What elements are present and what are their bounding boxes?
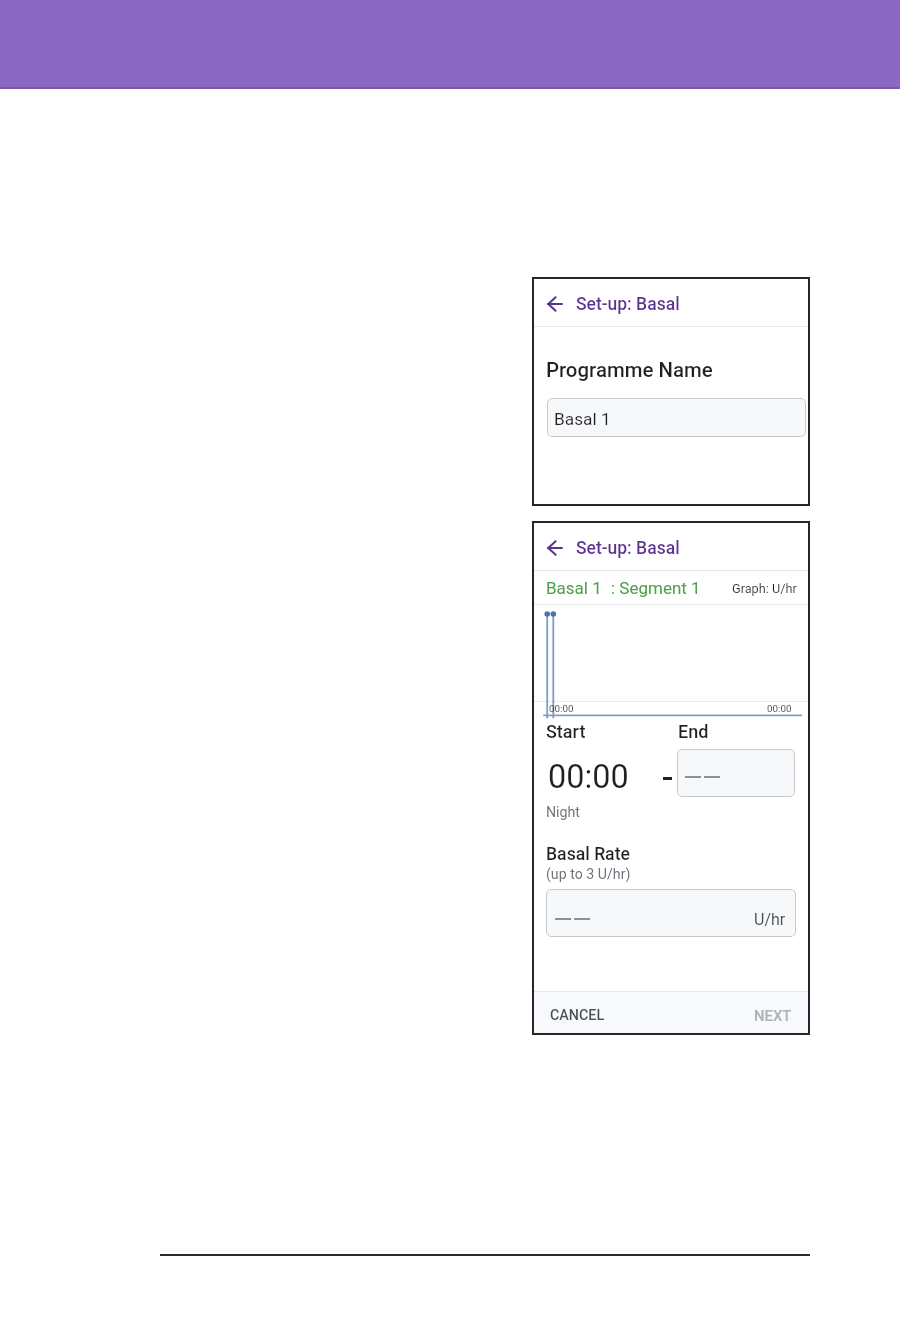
staticText: 00:00 — [548, 758, 629, 796]
staticText: CANCEL — [550, 1007, 605, 1024]
staticText: NEXT — [754, 1007, 792, 1024]
button[interactable]: NEXT — [754, 999, 792, 1032]
staticText: Basal 1 — [554, 409, 611, 429]
button[interactable]: Back — [541, 534, 569, 562]
staticText: Set-up: Basal — [576, 538, 680, 559]
staticText: 00:00 — [549, 703, 574, 714]
staticText: Programme Name — [546, 358, 713, 382]
button[interactable] — [677, 749, 795, 797]
staticText: (up to 3 U/hr) — [546, 866, 631, 883]
button[interactable]: Basal 1 — [547, 398, 806, 437]
staticText: Night — [546, 804, 580, 821]
staticText: End — [678, 721, 709, 742]
staticText: 00:00 — [767, 703, 792, 714]
staticText: U/hr — [754, 910, 786, 929]
button[interactable]: U/hr — [546, 889, 796, 937]
staticText: Start — [546, 721, 586, 742]
staticText: Basal Rate — [546, 844, 630, 865]
button[interactable]: Back — [541, 290, 569, 318]
button[interactable]: CANCEL — [550, 999, 605, 1032]
staticText: Set-up: Basal — [576, 294, 680, 315]
staticText: Basal 1 — [546, 578, 602, 598]
staticText: Graph: U/hr — [732, 581, 797, 596]
staticText: : Segment 1 — [611, 578, 701, 598]
